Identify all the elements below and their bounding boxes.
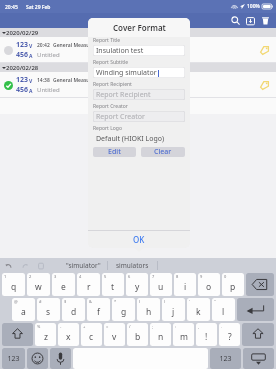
staticText: / [129, 324, 131, 329]
staticText: n [158, 331, 164, 343]
button[interactable]: OK [88, 231, 190, 248]
button[interactable]: Clear [141, 147, 185, 157]
staticText: 2 [29, 274, 32, 279]
button[interactable]: # [37, 298, 60, 321]
button[interactable]: Insulation test [93, 45, 185, 56]
staticText: ) [164, 299, 166, 304]
button[interactable]: 123 [2, 348, 25, 369]
staticText: m [180, 331, 188, 343]
button[interactable]: 0 [222, 273, 244, 296]
staticText: V [29, 43, 33, 50]
staticText: Untitled [37, 51, 60, 59]
staticText: 456 [16, 50, 29, 60]
staticText: + [83, 324, 86, 329]
button[interactable]: 1 [2, 273, 25, 296]
button[interactable]: = [104, 323, 125, 346]
staticText: "simulator" [66, 261, 101, 270]
button[interactable]: . [219, 323, 240, 346]
button[interactable]: 2 [27, 273, 50, 296]
button[interactable]: 123 [210, 348, 241, 369]
button[interactable]: + [81, 323, 102, 346]
staticText: $ [64, 299, 67, 304]
staticText: Report Title [93, 37, 121, 44]
staticText: ; [152, 324, 154, 329]
button[interactable]: % [35, 323, 56, 346]
button[interactable]: 8 [174, 273, 196, 296]
button[interactable]: - [58, 323, 79, 346]
button[interactable]: , [196, 323, 217, 346]
button[interactable]: Paste [36, 261, 46, 271]
staticText: General Measure [53, 77, 95, 84]
staticText: 4 [79, 274, 82, 279]
staticText: ? [228, 331, 232, 343]
staticText: 9 [200, 274, 203, 279]
button[interactable]: Shift right [242, 323, 274, 346]
button[interactable]: ) [162, 298, 185, 321]
button[interactable]: 123 [0, 72, 276, 98]
staticText: w [35, 281, 42, 293]
button[interactable]: Tag [259, 45, 270, 56]
button[interactable]: Return [237, 298, 274, 321]
button[interactable]: Delete [259, 14, 272, 27]
staticText: 20:45 [5, 4, 18, 11]
staticText: 20:42 [37, 42, 50, 49]
staticText: y [135, 281, 140, 293]
button[interactable]: 9 [198, 273, 220, 296]
staticText: & [89, 299, 92, 304]
staticText: 5 [104, 274, 107, 279]
staticText: 6 [128, 274, 131, 279]
staticText: h [146, 306, 152, 318]
button[interactable]: * [112, 298, 135, 321]
staticText: 456 [16, 85, 29, 95]
button[interactable]: Hide keyboard [243, 348, 274, 369]
button[interactable]: ( [137, 298, 160, 321]
button[interactable]: simulators [108, 261, 157, 270]
button[interactable]: Edit [93, 147, 136, 157]
staticText: Report Logo [93, 125, 122, 132]
button[interactable]: 4 [77, 273, 100, 296]
button[interactable]: Winding simulator [93, 67, 185, 78]
button[interactable]: Search [229, 14, 242, 27]
staticText: q [11, 281, 17, 293]
button[interactable]: Redo [20, 261, 30, 271]
button[interactable]: @ [12, 298, 35, 321]
staticText: Clear [154, 147, 172, 157]
button[interactable]: Tag [259, 80, 270, 91]
button[interactable]: 5 [102, 273, 124, 296]
button[interactable]: 123 [0, 37, 276, 63]
button[interactable]: ; [150, 323, 171, 346]
staticText: Default (HIOKI Logo) [96, 134, 165, 144]
button[interactable]: Export [244, 14, 257, 27]
button[interactable]: Shift [2, 323, 33, 346]
button[interactable]: 6 [126, 273, 148, 296]
button[interactable]: : [173, 323, 194, 346]
staticText: p [230, 281, 236, 293]
button[interactable]: Emoji [27, 348, 48, 369]
staticText: OK [133, 234, 145, 245]
button[interactable]: "simulator" [60, 261, 107, 270]
button[interactable]: Report Recipient [93, 89, 185, 100]
button[interactable]: Dictation [50, 348, 71, 369]
staticText: 123 [7, 354, 20, 364]
staticText: a [21, 306, 26, 318]
staticText: = [106, 324, 109, 329]
staticText: o [206, 281, 212, 293]
button[interactable]: / [127, 323, 148, 346]
button[interactable]: 3 [52, 273, 75, 296]
button[interactable]: 7 [150, 273, 172, 296]
button[interactable]: Backspace [246, 273, 274, 296]
staticText: 123 [219, 354, 232, 364]
staticText: : [175, 324, 177, 329]
button[interactable]: Undo [4, 261, 14, 271]
button[interactable]: Report Creator [93, 111, 185, 122]
staticText: s [46, 306, 51, 318]
button[interactable]: ' [187, 298, 210, 321]
staticText: 1 [4, 274, 7, 279]
staticText: * [114, 299, 117, 304]
button[interactable]: & [87, 298, 110, 321]
staticText: t [111, 281, 115, 293]
button[interactable]: $ [62, 298, 85, 321]
staticText: 0 [224, 274, 227, 279]
button[interactable]: " [212, 298, 235, 321]
